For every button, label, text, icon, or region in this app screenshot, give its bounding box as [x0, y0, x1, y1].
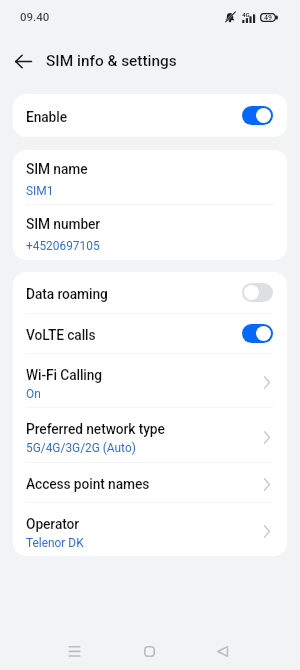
- button[interactable]: Data roaming: [13, 272, 287, 313]
- staticText: 49: [264, 14, 272, 22]
- button[interactable]: SIM number: [13, 205, 287, 260]
- staticText: VoLTE calls: [26, 327, 96, 343]
- staticText: Telenor DK: [26, 536, 84, 550]
- staticText: 4G: [242, 11, 250, 18]
- button[interactable]: Back: [201, 630, 243, 670]
- button[interactable]: Back: [9, 47, 37, 75]
- button[interactable]: Wi-Fi Calling: [13, 354, 287, 407]
- staticText: On: [26, 387, 41, 401]
- staticText: Data roaming: [26, 286, 108, 302]
- staticText: +4520697105: [26, 239, 100, 253]
- staticText: SIM info & settings: [46, 52, 177, 70]
- button[interactable]: Operator: [13, 503, 287, 556]
- staticText: Preferred network type: [26, 421, 165, 437]
- staticText: Operator: [26, 516, 80, 532]
- staticText: 5G/4G/3G/2G (Auto): [26, 441, 136, 455]
- staticText: SIM name: [26, 161, 88, 177]
- staticText: SIM number: [26, 216, 101, 232]
- button[interactable]: Access point names: [13, 463, 287, 502]
- button[interactable]: VoLTE calls: [13, 314, 287, 353]
- staticText: Enable: [26, 109, 67, 125]
- staticText: Access point names: [26, 476, 150, 492]
- button[interactable]: Recents: [53, 630, 95, 670]
- staticText: Wi-Fi Calling: [26, 367, 103, 383]
- button[interactable]: SIM name: [13, 150, 287, 204]
- staticText: SIM1: [26, 184, 54, 198]
- button[interactable]: Home: [128, 630, 170, 670]
- staticText: 09.40: [20, 10, 50, 23]
- button[interactable]: Preferred network type: [13, 408, 287, 462]
- button[interactable]: Enable: [13, 94, 287, 137]
